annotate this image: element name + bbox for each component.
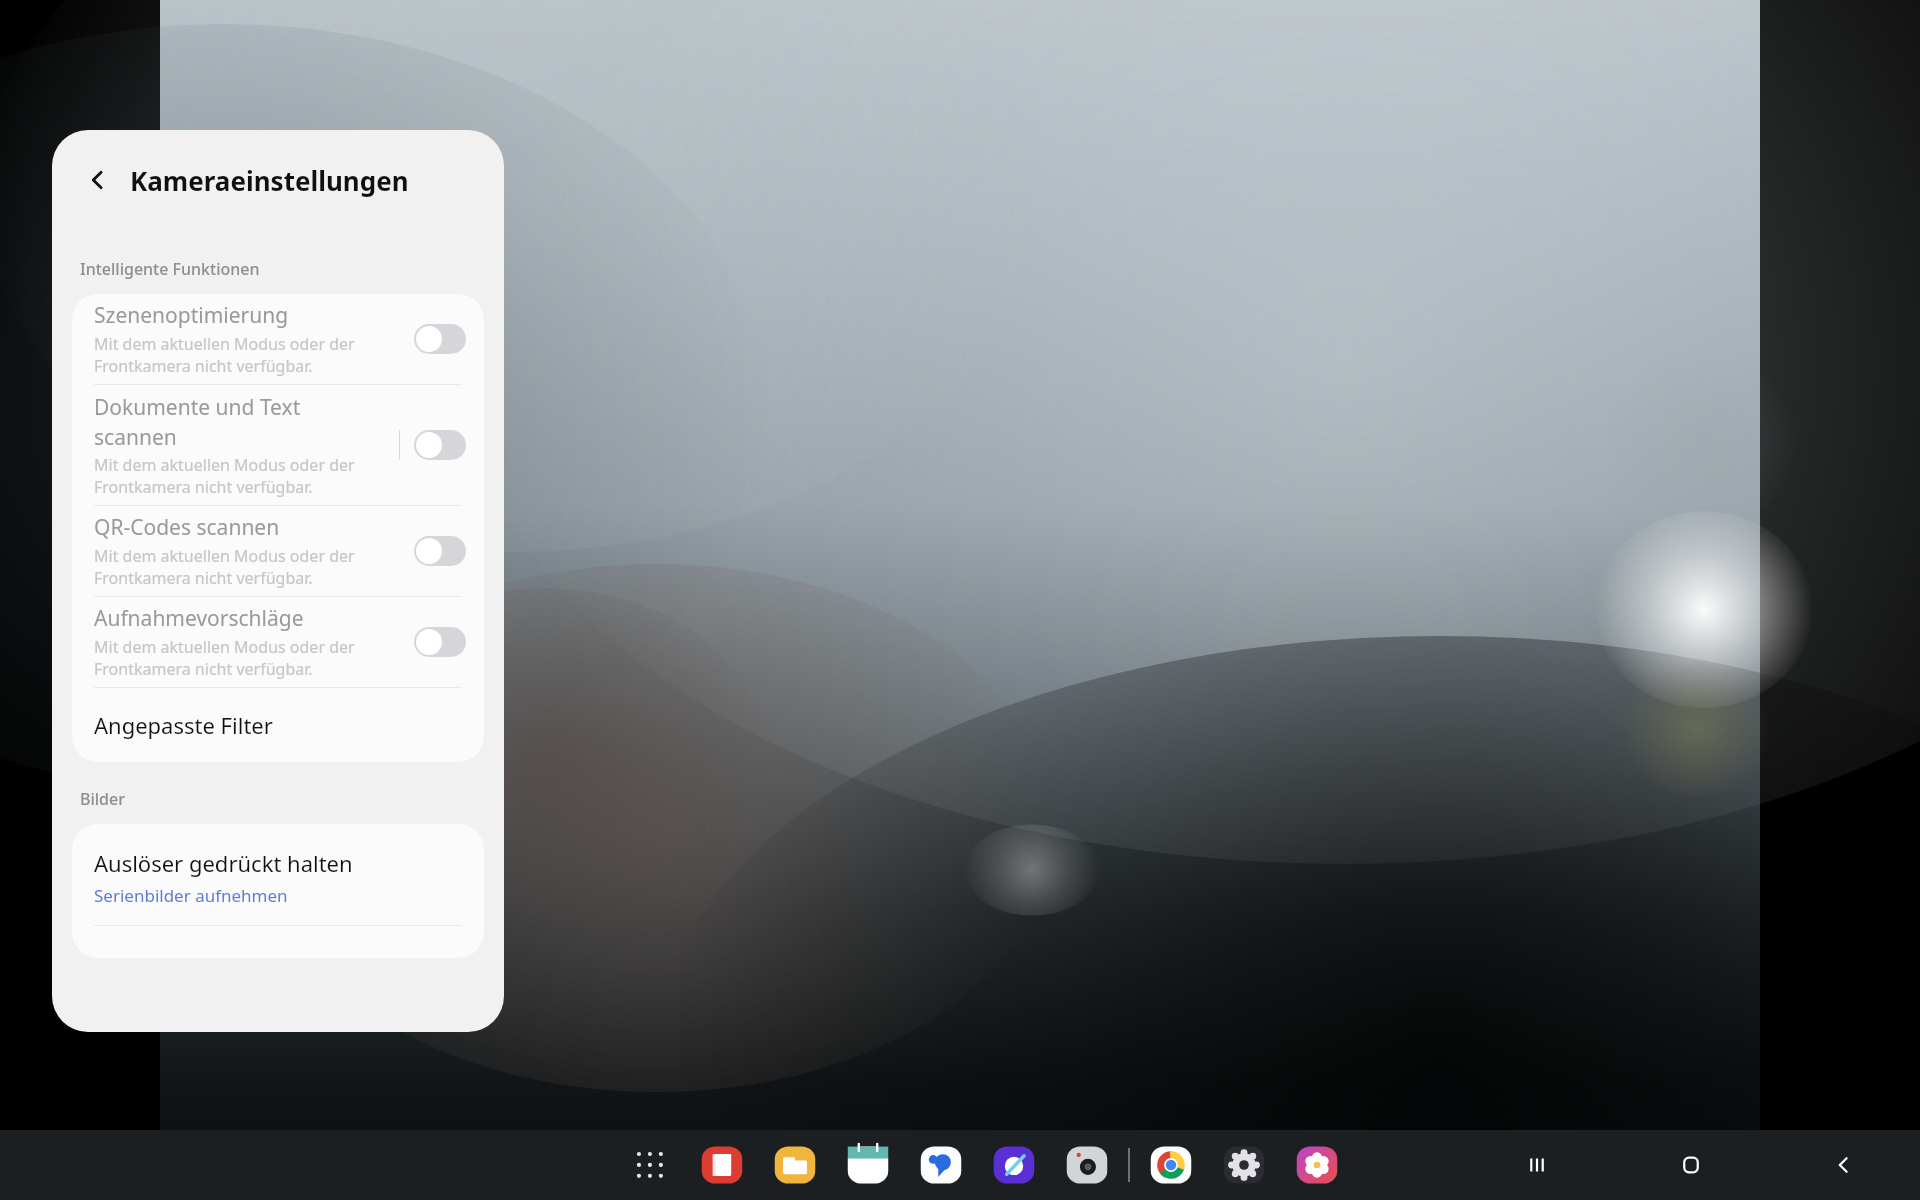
staticText: Mit dem aktuellen Modus oder der Frontka… xyxy=(94,333,355,377)
staticText: Auslöser gedrückt halten xyxy=(94,848,353,878)
button[interactable]: Startbildschirm xyxy=(1614,1130,1767,1200)
button[interactable]: Apps xyxy=(622,1137,678,1193)
staticText: Angepasste Filter xyxy=(94,710,273,740)
staticText: QR-Codes scannen xyxy=(94,513,280,542)
staticText: Aufnahmevorschläge xyxy=(94,604,304,633)
button[interactable]: Szenenoptimierung xyxy=(72,294,484,384)
staticText: Serienbilder aufnehmen xyxy=(94,884,288,907)
button[interactable]: Kalender xyxy=(840,1137,896,1193)
button[interactable]: Galerie xyxy=(1289,1137,1345,1193)
staticText: Kameraeinstellungen xyxy=(130,163,409,198)
staticText: Mit dem aktuellen Modus oder der Frontka… xyxy=(94,454,355,498)
staticText: Bilder xyxy=(80,788,125,810)
button[interactable]: Zurück xyxy=(76,158,120,202)
button[interactable]: Dokumente und Text scannen xyxy=(72,385,484,505)
button[interactable]: Ein/Aus xyxy=(414,324,466,354)
button[interactable]: Einstellungen xyxy=(1216,1137,1272,1193)
button[interactable]: Angepasste Filter xyxy=(72,688,484,762)
staticText: Dokumente und Text scannen xyxy=(94,393,301,451)
button[interactable]: Messages xyxy=(913,1137,969,1193)
staticText: Szenenoptimierung xyxy=(94,301,289,330)
button[interactable]: Auslöser gedrückt halten xyxy=(72,824,484,925)
button[interactable]: QR-Codes scannen xyxy=(72,506,484,596)
button[interactable]: Eigene Dateien xyxy=(767,1137,823,1193)
button[interactable]: Zurück xyxy=(1767,1130,1920,1200)
button[interactable]: Ein/Aus xyxy=(414,430,466,460)
staticText: Mit dem aktuellen Modus oder der Frontka… xyxy=(94,545,355,589)
button[interactable]: Aufnahmevorschläge xyxy=(72,597,484,687)
button[interactable]: Kamera xyxy=(1059,1137,1115,1193)
button[interactable]: Notizen xyxy=(694,1137,750,1193)
staticText: Mit dem aktuellen Modus oder der Frontka… xyxy=(94,636,355,680)
button[interactable]: Letzte Apps xyxy=(1460,1130,1614,1200)
button[interactable]: Chrome xyxy=(1143,1137,1199,1193)
button[interactable]: Ein/Aus xyxy=(414,536,466,566)
staticText: Intelligente Funktionen xyxy=(80,258,260,280)
button[interactable]: Internet xyxy=(986,1137,1042,1193)
button[interactable]: Ein/Aus xyxy=(414,627,466,657)
